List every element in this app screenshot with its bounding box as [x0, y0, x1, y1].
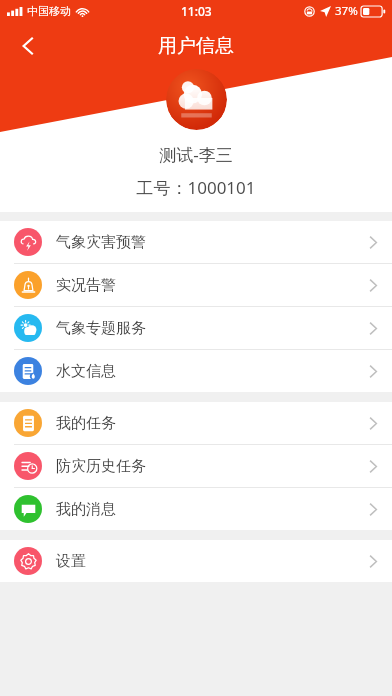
staticText: 我的消息: [56, 500, 116, 519]
staticText: 11:03: [181, 3, 212, 19]
staticText: 实况告警: [56, 276, 116, 295]
staticText: 水文信息: [56, 362, 116, 381]
button[interactable]: 气象灾害预警: [0, 221, 392, 263]
button[interactable]: 实况告警: [0, 264, 392, 306]
button[interactable]: 我的消息: [0, 488, 392, 530]
staticText: 测试-李三: [159, 143, 233, 166]
staticText: 防灾历史任务: [56, 457, 146, 476]
staticText: 37%: [335, 3, 358, 19]
button[interactable]: 防灾历史任务: [0, 445, 392, 487]
staticText: 中国移动: [27, 4, 71, 18]
button[interactable]: 气象专题服务: [0, 307, 392, 349]
staticText: 设置: [56, 552, 86, 571]
staticText: 工号：1000101: [136, 176, 256, 199]
staticText: 气象专题服务: [56, 319, 146, 338]
button[interactable]: 我的任务: [0, 402, 392, 444]
button[interactable]: 设置: [0, 540, 392, 582]
staticText: 气象灾害预警: [56, 233, 146, 252]
button[interactable]: [166, 69, 227, 130]
button[interactable]: 水文信息: [0, 350, 392, 392]
staticText: 我的任务: [56, 414, 116, 433]
button[interactable]: Back: [6, 24, 50, 68]
staticText: 用户信息: [158, 34, 234, 58]
